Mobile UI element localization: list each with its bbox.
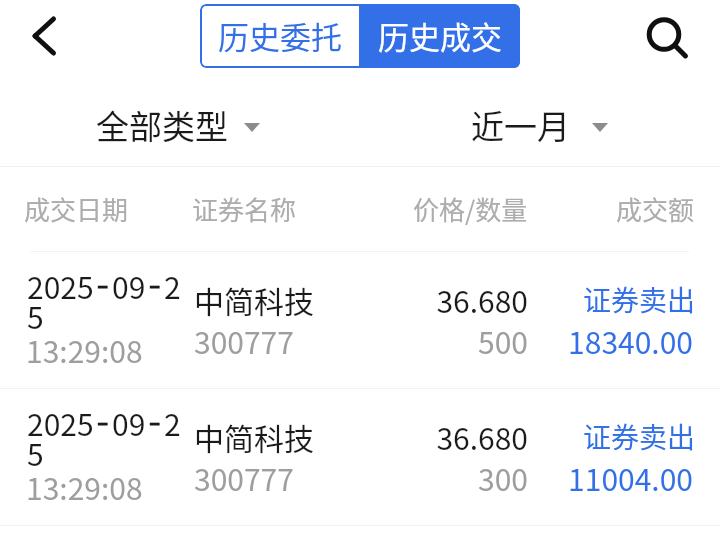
- staticText: 13:29:08: [26, 465, 143, 508]
- staticText: 500: [0, 319, 528, 362]
- staticText: 5: [27, 294, 44, 337]
- staticText: 09: [112, 264, 146, 307]
- staticText: 全部类型: [96, 101, 228, 149]
- staticText: 2: [164, 401, 181, 444]
- staticText: 成交额: [616, 190, 695, 228]
- staticText: 36.680: [0, 415, 528, 458]
- staticText: 13:29:08: [26, 328, 143, 371]
- button[interactable]: 全部类型: [0, 72, 360, 166]
- staticText: 历史成交: [378, 13, 502, 58]
- button[interactable]: 历史委托: [200, 4, 359, 68]
- button[interactable]: 2025: [0, 389, 720, 526]
- button[interactable]: 2025: [0, 252, 720, 389]
- staticText: 36.680: [0, 278, 528, 321]
- staticText: 价格/数量: [413, 190, 528, 228]
- staticText: 5: [27, 431, 44, 474]
- staticText: 11004.00: [0, 456, 693, 499]
- button[interactable]: Search: [634, 0, 720, 72]
- button[interactable]: 历史成交: [359, 4, 520, 68]
- staticText: 09: [112, 401, 146, 444]
- staticText: 300: [0, 456, 528, 499]
- button[interactable]: Back: [0, 0, 76, 72]
- staticText: 2025: [27, 264, 94, 307]
- staticText: 证券卖出: [0, 416, 695, 457]
- staticText: 近一月: [471, 101, 570, 149]
- staticText: 300777: [194, 456, 294, 499]
- staticText: 证券名称: [192, 190, 297, 228]
- staticText: 成交日期: [24, 190, 129, 228]
- staticText: 2025: [27, 401, 94, 444]
- staticText: 300777: [194, 319, 294, 362]
- staticText: 2: [164, 264, 181, 307]
- staticText: 证券卖出: [0, 279, 695, 320]
- staticText: 历史委托: [218, 13, 342, 58]
- button[interactable]: 近一月: [360, 72, 720, 166]
- staticText: 中简科技: [194, 278, 314, 321]
- staticText: 中简科技: [194, 415, 314, 458]
- staticText: 18340.00: [0, 319, 693, 362]
